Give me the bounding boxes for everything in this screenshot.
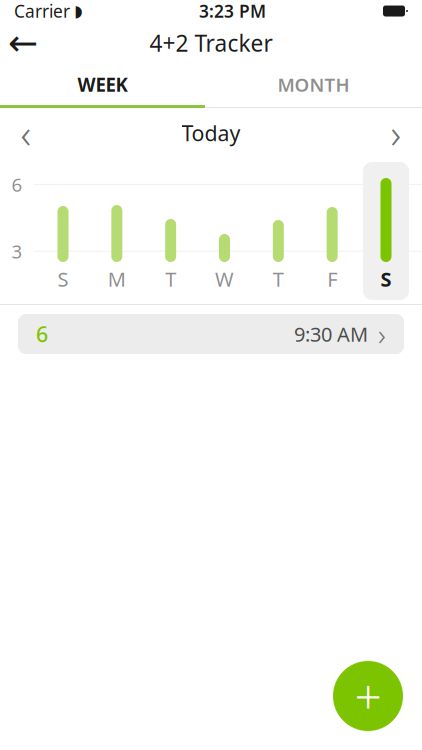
button[interactable]: MONTH (205, 64, 422, 105)
staticText: 3 (11, 239, 22, 264)
button[interactable]: 6 (18, 314, 404, 354)
staticText: + (354, 664, 381, 728)
staticText: MONTH (277, 72, 349, 97)
staticText: F (327, 266, 337, 292)
staticText: Today (181, 119, 240, 147)
staticText: ← (8, 23, 38, 63)
button[interactable]: Next week (370, 110, 422, 156)
staticText: 6 (11, 172, 22, 197)
staticText: WEEK (77, 72, 127, 97)
staticText: M (108, 266, 126, 292)
staticText: 4+2 Tracker (149, 28, 272, 58)
button[interactable]: Back (0, 23, 46, 63)
button[interactable]: WEEK (0, 64, 205, 105)
staticText: ◗ (74, 2, 82, 20)
staticText: ‹ (20, 106, 31, 159)
staticText: W (215, 266, 234, 292)
staticText: 6 (36, 320, 48, 348)
staticText: T (165, 266, 176, 292)
staticText: 3:23 PM (199, 0, 266, 22)
staticText: Carrier (14, 0, 70, 22)
staticText: S (380, 266, 391, 292)
staticText: › (378, 314, 386, 353)
button[interactable]: Previous week (0, 110, 52, 156)
staticText: 9:30 AM (294, 321, 368, 347)
staticText: T (273, 266, 284, 292)
button[interactable]: Add entry (333, 661, 403, 731)
staticText: › (390, 106, 401, 159)
staticText: S (57, 266, 68, 292)
